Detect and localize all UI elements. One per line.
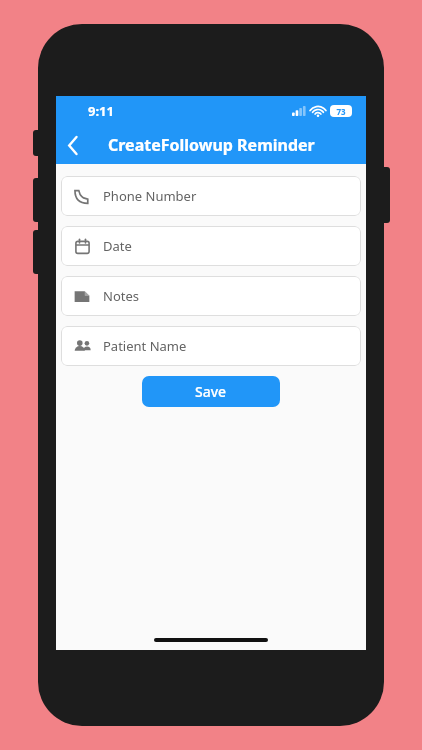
staticText: Patient Name: [103, 337, 187, 355]
staticText: Save: [195, 382, 227, 401]
staticText: Phone Number: [103, 187, 197, 205]
button[interactable]: Back: [56, 128, 90, 162]
staticText: Date: [103, 237, 132, 255]
button[interactable]: Date: [61, 226, 361, 266]
staticText: 9:11: [88, 102, 114, 120]
button[interactable]: Save: [142, 376, 280, 407]
button[interactable]: Phone Number: [61, 176, 361, 216]
staticText: Notes: [103, 287, 139, 305]
button[interactable]: Patient Name: [61, 326, 361, 366]
button[interactable]: Notes: [61, 276, 361, 316]
staticText: CreateFollowup Reminder: [108, 134, 315, 156]
staticText: 73: [336, 106, 346, 117]
